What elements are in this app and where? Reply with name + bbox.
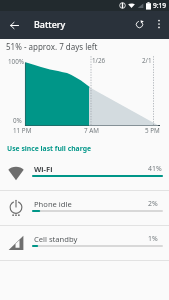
staticText: 100% [8, 57, 25, 66]
staticText: 5 PM [145, 126, 160, 135]
staticText: 0% [13, 116, 22, 125]
staticText: 1% [148, 234, 158, 243]
staticText: 2/1 [142, 56, 152, 65]
button[interactable]: Cell standby [0, 225, 169, 260]
button[interactable]: More options [151, 16, 167, 32]
staticText: Battery [34, 18, 66, 30]
staticText: 2% [148, 199, 158, 208]
staticText: 51% - approx. 7 days left [6, 41, 98, 52]
staticText: 9:19 [153, 1, 167, 10]
staticText: 1/26 [92, 56, 106, 65]
staticText: Phone idle [34, 199, 72, 209]
staticText: Cell standby [34, 234, 78, 244]
staticText: Use since last full charge [7, 144, 91, 153]
button[interactable]: Wi-Fi [0, 155, 169, 190]
staticText: 7 AM [84, 126, 99, 135]
staticText: 41% [148, 164, 162, 173]
button[interactable]: Phone idle [0, 190, 169, 225]
button[interactable]: Navigate up [6, 17, 22, 33]
staticText: 11 PM [13, 126, 32, 135]
button[interactable]: Refresh [131, 16, 147, 32]
staticText: Wi-Fi [34, 164, 53, 174]
